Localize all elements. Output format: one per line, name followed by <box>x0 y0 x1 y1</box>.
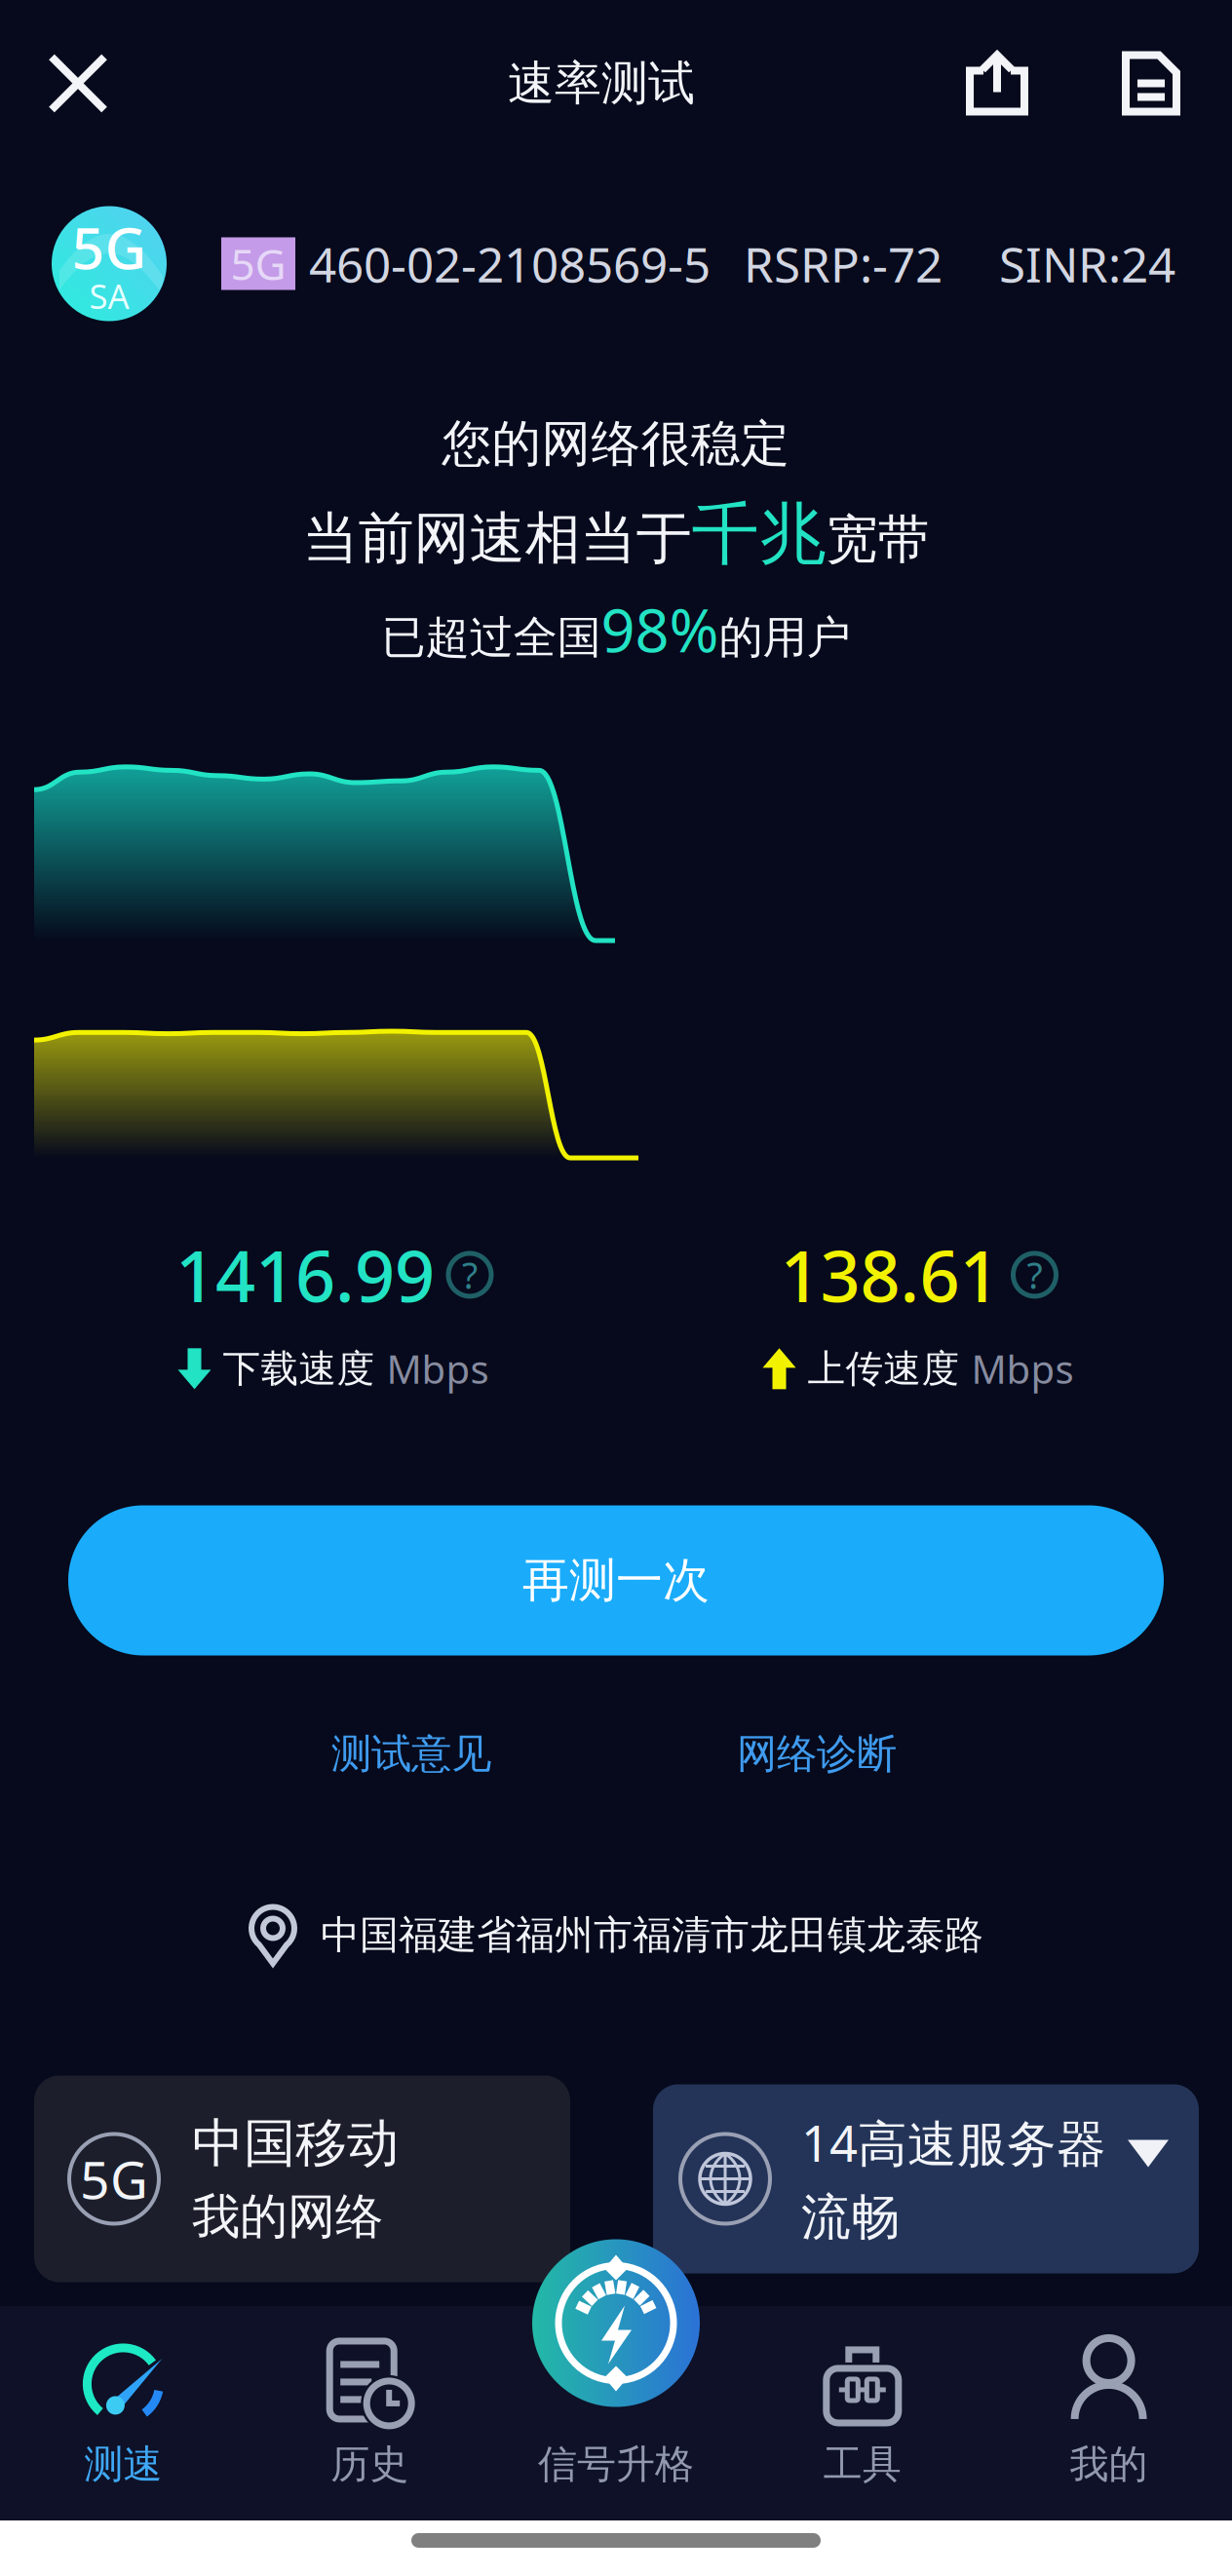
button[interactable]: 报告 <box>1097 25 1205 142</box>
button[interactable]: 说明 <box>1013 1253 1056 1296</box>
staticText: 测试意见 <box>331 1729 491 1779</box>
staticText: 我的网络 <box>192 2187 383 2246</box>
staticText: 14高速服务器 <box>801 2110 1106 2175</box>
staticText: Mbps <box>386 1343 489 1395</box>
button[interactable]: 14高速服务器 <box>653 2084 1199 2273</box>
staticText: 460-02-2108569-5 <box>309 232 711 296</box>
staticText: 千兆 <box>692 493 826 576</box>
staticText: SINR:24 <box>999 232 1175 296</box>
button[interactable]: 网络诊断 <box>737 1729 897 1779</box>
staticText: 138.61 <box>780 1228 1000 1321</box>
staticText: 测速 <box>84 2440 162 2488</box>
button[interactable]: 测试意见 <box>331 1729 491 1779</box>
button[interactable]: 说明 <box>448 1253 491 1296</box>
button[interactable]: 信号升格 <box>493 2307 739 2521</box>
staticText: 我的 <box>1070 2440 1148 2488</box>
staticText: 网络诊断 <box>737 1729 897 1779</box>
staticText: 上传速度 <box>808 1346 960 1392</box>
button[interactable]: 分享 <box>943 25 1051 142</box>
button[interactable]: 工具 <box>739 2307 986 2521</box>
staticText: 流畅 <box>801 2187 901 2248</box>
staticText: 再测一次 <box>522 1552 710 1609</box>
staticText: Mbps <box>971 1343 1074 1395</box>
staticText: 的用户 <box>719 611 850 665</box>
button[interactable]: 信号升格 <box>532 2239 700 2407</box>
staticText: 中国福建省福州市福清市龙田镇龙泰路 <box>321 1911 983 1959</box>
staticText: 工具 <box>823 2440 901 2488</box>
staticText: 历史 <box>331 2440 409 2488</box>
staticText: 宽带 <box>826 508 929 572</box>
staticText: 5G <box>231 235 286 292</box>
button[interactable]: 关闭 <box>19 25 136 142</box>
staticText: 下载速度 <box>223 1346 375 1392</box>
staticText: ? <box>1027 1251 1042 1299</box>
staticText: 您的网络很稳定 <box>442 414 790 474</box>
button[interactable]: 再测一次 <box>68 1505 1164 1655</box>
staticText: 信号升格 <box>538 2440 694 2488</box>
button[interactable]: 历史 <box>246 2307 493 2521</box>
staticText: 5G <box>72 209 147 285</box>
staticText: 当前网速相当于 <box>303 504 692 573</box>
staticText: SA <box>89 273 129 318</box>
staticText: RSRP:-72 <box>744 232 943 296</box>
staticText: 1416.99 <box>175 1228 435 1321</box>
staticText: ? <box>462 1251 478 1299</box>
staticText: 中国移动 <box>192 2111 399 2175</box>
staticText: 5G <box>80 2144 148 2213</box>
button[interactable]: 我的 <box>986 2307 1232 2521</box>
button[interactable]: 测速 <box>0 2307 246 2521</box>
staticText: 已超过全国 <box>382 611 601 665</box>
staticText: 速率测试 <box>508 55 695 112</box>
staticText: 98% <box>601 589 719 669</box>
button[interactable]: 5G <box>34 2076 570 2282</box>
